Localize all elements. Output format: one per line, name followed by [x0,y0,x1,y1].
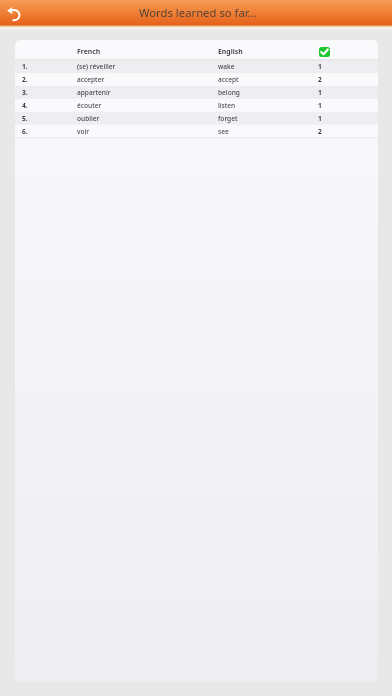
staticText: French [77,47,101,56]
staticText: 2. [22,75,28,84]
button[interactable]: 4. [15,99,378,112]
staticText: 1 [318,114,322,123]
staticText: belong [218,88,240,97]
staticText: 3. [22,88,28,97]
staticText: appartenir [77,88,111,97]
staticText: 1 [318,88,322,97]
staticText: wake [218,62,235,71]
staticText: English [218,47,243,56]
staticText: oublier [77,114,100,123]
staticText: 6. [22,127,28,136]
staticText: accepter [77,75,105,84]
staticText: 2 [318,127,322,136]
button[interactable]: 2. [15,73,378,86]
button[interactable]: 1. [15,60,378,73]
staticText: (se) réveiller [77,62,116,71]
staticText: accept [218,75,239,84]
staticText: 4. [22,101,28,110]
staticText: 5. [22,114,28,123]
staticText: 1 [318,62,322,71]
staticText: Words learned so far... [139,5,257,20]
button[interactable]: 3. [15,86,378,99]
button[interactable]: Toggle all learned [319,47,330,57]
staticText: listen [218,101,236,110]
staticText: écouter [77,101,102,110]
staticText: voir [77,127,90,136]
button[interactable]: 6. [15,125,378,138]
staticText: forget [218,114,238,123]
staticText: 1. [22,62,28,71]
staticText: 2 [318,75,322,84]
button[interactable]: 5. [15,112,378,125]
staticText: 1 [318,101,322,110]
button[interactable]: Back [3,2,25,24]
staticText: see [218,127,229,136]
